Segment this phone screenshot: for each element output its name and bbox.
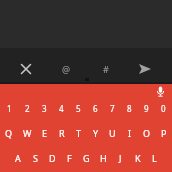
- staticText: P: [161, 127, 167, 139]
- staticText: 7: [110, 103, 115, 114]
- button[interactable]: [127, 51, 163, 87]
- staticText: 8: [127, 103, 132, 114]
- button[interactable]: 2: [18, 96, 36, 120]
- button[interactable]: F: [61, 146, 78, 170]
- staticText: 2: [25, 103, 30, 114]
- button[interactable]: K: [129, 146, 146, 170]
- staticText: Q: [5, 127, 13, 139]
- staticText: 3: [42, 103, 47, 114]
- staticText: R: [59, 127, 65, 139]
- staticText: E: [42, 127, 48, 139]
- button[interactable]: T: [70, 121, 87, 145]
- staticText: F: [67, 152, 72, 164]
- button[interactable]: J: [112, 146, 129, 170]
- staticText: W: [23, 127, 32, 139]
- button[interactable]: P: [155, 121, 172, 145]
- button[interactable]: I: [121, 121, 138, 145]
- staticText: 9: [144, 103, 149, 114]
- staticText: U: [109, 127, 116, 139]
- button[interactable]: W: [18, 121, 36, 145]
- button[interactable]: Y: [87, 121, 104, 145]
- button[interactable]: [8, 51, 44, 87]
- staticText: Y: [93, 127, 99, 139]
- button[interactable]: A: [9, 146, 27, 170]
- staticText: #: [103, 63, 109, 75]
- staticText: D: [49, 152, 56, 164]
- staticText: 0: [161, 103, 166, 114]
- button[interactable]: 8: [121, 96, 138, 120]
- button[interactable]: 6: [87, 96, 104, 120]
- staticText: T: [76, 127, 82, 139]
- staticText: 4: [59, 103, 64, 114]
- button[interactable]: H: [95, 146, 112, 170]
- button[interactable]: R: [53, 121, 70, 145]
- staticText: 6: [93, 103, 98, 114]
- staticText: H: [100, 152, 107, 164]
- staticText: S: [33, 152, 38, 164]
- button[interactable]: G: [78, 146, 95, 170]
- button[interactable]: 4: [53, 96, 70, 120]
- staticText: 1: [7, 103, 12, 114]
- button[interactable]: #: [88, 51, 124, 87]
- button[interactable]: 5: [70, 96, 87, 120]
- staticText: 5: [76, 103, 81, 114]
- button[interactable]: D: [44, 146, 61, 170]
- button[interactable]: S: [27, 146, 44, 170]
- button[interactable]: 0: [155, 96, 172, 120]
- staticText: K: [135, 152, 141, 164]
- button[interactable]: 7: [104, 96, 121, 120]
- staticText: A: [15, 152, 21, 164]
- staticText: G: [83, 152, 90, 164]
- button[interactable]: 3: [36, 96, 53, 120]
- button[interactable]: L: [146, 146, 163, 170]
- button[interactable]: 9: [138, 96, 155, 120]
- staticText: J: [119, 152, 122, 164]
- button[interactable]: U: [104, 121, 121, 145]
- button[interactable]: 1: [0, 96, 18, 120]
- staticText: L: [152, 152, 157, 164]
- button[interactable]: @: [48, 51, 84, 87]
- button[interactable]: [149, 81, 172, 101]
- staticText: @: [62, 63, 71, 75]
- button[interactable]: E: [36, 121, 53, 145]
- button[interactable]: O: [138, 121, 155, 145]
- staticText: O: [143, 127, 151, 139]
- staticText: I: [128, 127, 132, 139]
- button[interactable]: Q: [0, 121, 18, 145]
